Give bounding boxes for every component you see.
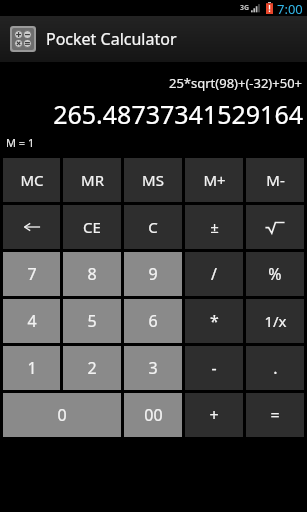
button[interactable]: 4 <box>3 299 60 343</box>
button[interactable]: / <box>185 252 243 296</box>
button[interactable]: 5 <box>63 299 121 343</box>
staticText: 7:00 <box>277 0 303 16</box>
staticText: ± <box>210 217 219 237</box>
button[interactable]: 8 <box>63 252 121 296</box>
staticText: / <box>211 263 217 285</box>
staticText: 7 <box>27 263 37 285</box>
button[interactable]: MS <box>124 158 182 202</box>
button[interactable]: 9 <box>124 252 182 296</box>
staticText: * <box>210 310 219 332</box>
button[interactable]: . <box>246 346 304 390</box>
staticText: 9 <box>148 263 158 285</box>
staticText: + <box>209 404 219 426</box>
button[interactable]: 3 <box>124 346 182 390</box>
staticText: CE <box>83 217 101 237</box>
button[interactable]: 0 <box>3 393 121 437</box>
staticText: 1 <box>27 357 37 379</box>
staticText: 00 <box>144 404 163 426</box>
button[interactable]: Square root <box>246 205 304 249</box>
staticText: = <box>270 404 280 426</box>
button[interactable]: 1 <box>3 346 60 390</box>
staticText: M+ <box>203 170 226 190</box>
staticText: M- <box>266 170 285 190</box>
staticText: % <box>268 263 282 285</box>
button[interactable]: 6 <box>124 299 182 343</box>
staticText: 1/x <box>264 311 287 331</box>
button[interactable]: * <box>185 299 243 343</box>
staticText: C <box>148 217 158 237</box>
button[interactable]: = <box>246 393 304 437</box>
staticText: 265.48737341529164 <box>4 97 303 131</box>
staticText: 3G <box>240 3 250 13</box>
staticText: 6 <box>148 310 158 332</box>
button[interactable]: C <box>124 205 182 249</box>
staticText: Pocket Calculator <box>46 28 177 50</box>
staticText: 5 <box>87 310 97 332</box>
button[interactable]: Backspace <box>3 205 60 249</box>
staticText: 4 <box>27 310 37 332</box>
button[interactable]: CE <box>63 205 121 249</box>
button[interactable]: % <box>246 252 304 296</box>
button[interactable]: + <box>185 393 243 437</box>
staticText: MR <box>81 170 104 190</box>
button[interactable]: M+ <box>185 158 243 202</box>
staticText: M = 1 <box>6 135 307 150</box>
button[interactable]: 1/x <box>246 299 304 343</box>
button[interactable]: MC <box>3 158 60 202</box>
button[interactable]: - <box>185 346 243 390</box>
button[interactable]: 7 <box>3 252 60 296</box>
staticText: MC <box>20 170 44 190</box>
button[interactable]: ± <box>185 205 243 249</box>
staticText: 8 <box>87 263 97 285</box>
button[interactable]: M- <box>246 158 304 202</box>
staticText: 3 <box>148 357 158 379</box>
staticText: MS <box>142 170 164 190</box>
button[interactable]: 2 <box>63 346 121 390</box>
staticText: . <box>273 357 278 379</box>
staticText: 0 <box>57 404 67 426</box>
staticText: 25*sqrt(98)+(-32)+50+ <box>5 74 302 92</box>
staticText: - <box>211 357 217 379</box>
staticText: 2 <box>87 357 97 379</box>
button[interactable]: MR <box>63 158 121 202</box>
button[interactable]: 00 <box>124 393 182 437</box>
